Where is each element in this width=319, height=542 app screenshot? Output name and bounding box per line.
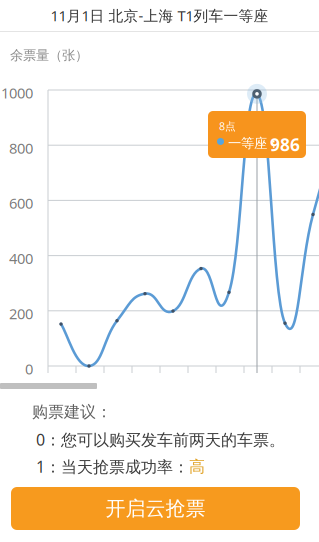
staticText: 一等座： xyxy=(228,135,280,151)
staticText: 开启云抢票 xyxy=(105,496,205,521)
button[interactable]: 开启云抢票 xyxy=(11,487,300,530)
staticText: 8点 xyxy=(219,119,236,133)
staticText: 11月1日 北京-上海 T1列车一等座 xyxy=(50,6,268,25)
staticText: 余票量（张） xyxy=(10,47,88,63)
staticText: 986 xyxy=(270,133,300,156)
staticText: 1：当天抢票成功率： xyxy=(36,456,189,477)
staticText: 0 xyxy=(25,359,33,378)
staticText: 600 xyxy=(9,193,33,213)
staticText: 200 xyxy=(9,304,33,323)
staticText: 1000 xyxy=(1,83,33,102)
staticText: 购票建议： xyxy=(32,402,112,422)
staticText: 800 xyxy=(9,138,33,158)
staticText: 400 xyxy=(9,249,33,268)
staticText: 高 xyxy=(189,457,205,476)
staticText: 0：您可以购买发车前两天的车票。 xyxy=(36,429,285,450)
